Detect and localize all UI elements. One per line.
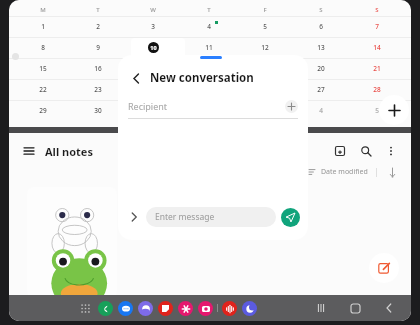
staticText: New conversation <box>150 70 254 86</box>
staticText: 3 <box>151 22 155 31</box>
staticText: 21 <box>373 64 381 73</box>
button[interactable]: 1 <box>15 16 70 37</box>
button[interactable]: Save note <box>331 142 349 160</box>
button[interactable]: 28 <box>349 79 405 100</box>
button[interactable]: 4 <box>293 100 349 121</box>
button[interactable]: 29 <box>15 100 70 121</box>
staticText: 11 <box>205 43 213 52</box>
other: Back <box>128 70 144 86</box>
button[interactable]: Gallery <box>178 301 193 316</box>
button[interactable]: 24 <box>125 79 181 100</box>
button[interactable]: Menu <box>21 143 37 159</box>
button[interactable]: 15 <box>15 58 70 79</box>
button[interactable]: 17 <box>125 58 181 79</box>
button[interactable] <box>27 187 117 297</box>
button[interactable]: Home <box>347 300 363 316</box>
staticText: All notes <box>45 144 93 159</box>
button[interactable]: Notes <box>158 301 173 316</box>
staticText: 22 <box>39 85 47 94</box>
staticText: Enter message <box>155 211 215 223</box>
staticText: 6 <box>319 22 323 31</box>
button[interactable]: 8 <box>15 37 70 58</box>
button[interactable]: 16 <box>70 58 125 79</box>
staticText: 16 <box>94 64 102 73</box>
staticText: 1 <box>41 22 45 31</box>
button[interactable]: More options <box>383 143 399 159</box>
button[interactable]: More <box>126 209 142 225</box>
staticText: 14 <box>373 43 381 52</box>
button[interactable]: 2 <box>181 100 237 121</box>
button[interactable]: Send <box>281 208 300 227</box>
button[interactable]: 13 <box>293 37 349 58</box>
staticText: 5 <box>375 106 379 115</box>
staticText: 10 <box>150 44 157 51</box>
button[interactable]: 27 <box>293 79 349 100</box>
button[interactable]: 10 <box>125 37 181 58</box>
button[interactable]: 20 <box>293 58 349 79</box>
button[interactable]: Date modified <box>309 167 368 177</box>
button[interactable]: 3 <box>237 100 293 121</box>
staticText: 29 <box>39 106 47 115</box>
staticText: W <box>150 6 156 14</box>
staticText: 7 <box>375 22 379 31</box>
staticText: 30 <box>94 106 102 115</box>
staticText: 5 <box>263 22 267 31</box>
button[interactable]: Back <box>128 67 308 89</box>
button[interactable]: Recipient <box>128 97 298 115</box>
button[interactable]: Enter message <box>146 207 276 227</box>
staticText: T <box>96 6 100 14</box>
staticText: 12 <box>261 43 269 52</box>
button[interactable]: 19 <box>237 58 293 79</box>
button[interactable]: Apps <box>77 300 93 316</box>
button[interactable]: 7 <box>349 16 405 37</box>
button[interactable]: New note <box>369 253 399 283</box>
button[interactable]: Back <box>381 300 397 316</box>
button[interactable]: 26 <box>237 79 293 100</box>
button[interactable]: 14 <box>349 37 405 58</box>
button[interactable]: Internet <box>138 301 153 316</box>
button[interactable]: 3 <box>125 16 181 37</box>
other: Add recipient <box>285 100 298 113</box>
staticText: Date modified <box>321 167 368 177</box>
button[interactable]: Phone <box>98 301 113 316</box>
staticText: 9 <box>96 43 100 52</box>
button[interactable]: 11 <box>181 37 237 58</box>
staticText: S <box>319 6 323 14</box>
button[interactable]: 5 <box>237 16 293 37</box>
button[interactable]: Sort direction <box>385 165 399 179</box>
button[interactable]: Add event <box>379 95 409 125</box>
button[interactable]: Camera <box>198 301 213 316</box>
staticText: 4 <box>319 106 323 115</box>
button[interactable]: 30 <box>70 100 125 121</box>
staticText: M <box>40 6 46 14</box>
button[interactable]: 22 <box>15 79 70 100</box>
button[interactable]: 25 <box>181 79 237 100</box>
button[interactable]: 18 <box>181 58 237 79</box>
button[interactable]: 9 <box>70 37 125 58</box>
button[interactable]: Messages <box>118 301 133 316</box>
button[interactable]: 23 <box>70 79 125 100</box>
button[interactable]: 6 <box>293 16 349 37</box>
button[interactable]: 4 <box>181 16 237 37</box>
staticText: S <box>375 6 379 14</box>
button[interactable]: 5 <box>349 100 405 121</box>
staticText: 2 <box>96 22 100 31</box>
button[interactable]: 2 <box>70 16 125 37</box>
button[interactable]: Recorder <box>222 301 237 316</box>
staticText: 27 <box>317 85 325 94</box>
button[interactable]: Assistant <box>242 301 257 316</box>
button[interactable]: 12 <box>237 37 293 58</box>
staticText: T <box>207 6 211 14</box>
button[interactable]: 21 <box>349 58 405 79</box>
staticText: 1 <box>151 106 155 115</box>
staticText: 4 <box>207 22 211 31</box>
button[interactable]: Recents <box>313 300 329 316</box>
button[interactable]: 1 <box>125 100 181 121</box>
button[interactable]: Search <box>357 142 375 160</box>
